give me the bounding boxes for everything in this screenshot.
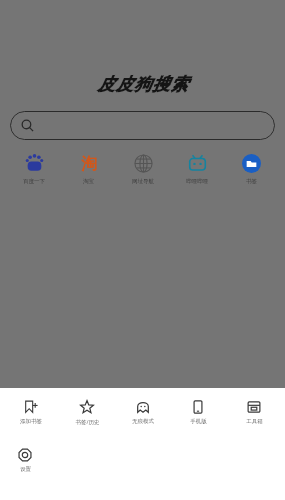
other: 网址导航 (134, 154, 153, 173)
other: 无痕模式 (136, 400, 150, 414)
staticText: 哔哩哔哩 (186, 178, 208, 185)
other: 设置 (18, 448, 32, 462)
staticText: 添加书签 (20, 418, 42, 425)
staticText: 无痕模式 (132, 418, 154, 425)
other: 添加书签 (24, 400, 38, 414)
button[interactable] (10, 111, 275, 140)
button[interactable]: 设置 (0, 446, 50, 475)
staticText: 网址导航 (132, 178, 154, 185)
staticText: 设置 (20, 466, 31, 473)
button[interactable]: 工具箱 (229, 398, 279, 427)
other: 书签历史 (80, 400, 94, 414)
staticText: 淘 (81, 154, 97, 173)
staticText: 书签/历史 (75, 418, 100, 426)
other: 工具箱 (247, 400, 261, 414)
other: 书签 (242, 154, 261, 173)
staticText: 手机版 (190, 418, 207, 425)
other: 淘宝 (79, 154, 98, 173)
other: 哔哩哔哩 (188, 154, 207, 173)
staticText: 皮皮狗搜索 (97, 74, 188, 95)
staticText: 书签 (246, 178, 257, 185)
other: 手机版 (191, 400, 205, 414)
button[interactable]: 淘宝 (64, 152, 112, 187)
staticText: 百度一下 (23, 178, 45, 185)
button[interactable]: 百度一下 (10, 152, 58, 187)
button[interactable]: 书签 (227, 152, 275, 187)
staticText: 工具箱 (246, 418, 263, 425)
button[interactable]: 书签历史 (62, 398, 112, 428)
other: 百度一下 (25, 154, 44, 173)
staticText: 淘宝 (83, 178, 94, 185)
button[interactable]: 网址导航 (119, 152, 167, 187)
button[interactable]: 无痕模式 (118, 398, 168, 427)
button[interactable]: 添加书签 (6, 398, 56, 427)
button[interactable]: 手机版 (173, 398, 223, 427)
button[interactable]: 哔哩哔哩 (173, 152, 221, 187)
